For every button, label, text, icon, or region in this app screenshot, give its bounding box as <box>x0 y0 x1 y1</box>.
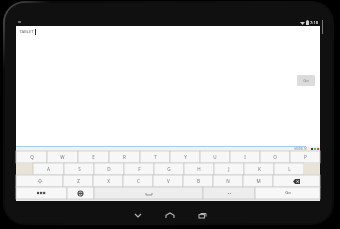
staticText: S <box>78 166 81 172</box>
staticText: O <box>273 154 277 160</box>
button[interactable]: M <box>243 175 273 187</box>
staticText: MODEL M <box>294 147 307 151</box>
button[interactable]: E <box>78 151 109 163</box>
button[interactable]: A <box>33 163 64 175</box>
button[interactable]: Space <box>94 187 203 199</box>
button[interactable]: W <box>47 151 78 163</box>
staticText: T <box>154 154 157 160</box>
staticText: 7:18 <box>310 20 318 25</box>
button[interactable]: Numbers and symbols <box>16 187 67 199</box>
staticText: G <box>167 166 171 172</box>
button[interactable]: Y <box>170 151 200 163</box>
staticText: V <box>167 178 170 184</box>
staticText: E <box>92 154 95 160</box>
button[interactable]: G <box>154 163 184 175</box>
button[interactable]: V <box>153 175 183 187</box>
staticText: A <box>47 166 50 172</box>
button[interactable]: S <box>64 163 94 175</box>
staticText: Go <box>285 190 291 196</box>
button[interactable]: L <box>274 163 304 175</box>
staticText: P <box>304 154 307 160</box>
button[interactable]: C <box>123 175 153 187</box>
button[interactable]: Go <box>297 75 315 86</box>
button[interactable]: Recent apps <box>190 208 214 222</box>
staticText: I <box>244 154 246 160</box>
staticText: L <box>288 166 291 172</box>
button[interactable]: X <box>93 175 123 187</box>
button[interactable]: Q <box>16 151 47 163</box>
button[interactable]: Shift <box>16 175 63 187</box>
button[interactable]: N <box>213 175 243 187</box>
button[interactable]: P <box>290 151 320 163</box>
staticText: W <box>60 154 65 160</box>
button[interactable]: O <box>260 151 290 163</box>
staticText: Z <box>77 178 80 184</box>
staticText: D <box>107 166 111 172</box>
button[interactable]: B <box>183 175 213 187</box>
staticText: K <box>258 166 261 172</box>
button[interactable]: J <box>214 163 244 175</box>
button[interactable]: U <box>200 151 230 163</box>
button[interactable]: Change keyboard language <box>67 187 94 199</box>
button[interactable]: H <box>184 163 214 175</box>
staticText: C <box>137 178 140 184</box>
staticText: Q <box>30 154 34 160</box>
staticText: R <box>123 154 126 160</box>
staticText: N <box>226 178 230 184</box>
staticText: X <box>107 178 110 184</box>
staticText: F <box>138 166 141 172</box>
button[interactable]: T <box>140 151 170 163</box>
button[interactable]: Home <box>158 208 182 222</box>
staticText: TABLET <box>19 29 34 35</box>
staticText: H <box>197 166 201 172</box>
button[interactable]: Z <box>63 175 93 187</box>
button[interactable]: Hide keyboard <box>126 208 150 222</box>
button[interactable]: F <box>124 163 154 175</box>
staticText: U <box>213 154 217 160</box>
button[interactable]: Period <box>203 187 255 199</box>
staticText: J <box>228 166 230 172</box>
button[interactable]: Backspace <box>273 175 320 187</box>
button[interactable]: D <box>94 163 124 175</box>
staticText: B <box>197 178 200 184</box>
staticText: Go <box>303 78 309 83</box>
staticText: Y <box>184 154 187 160</box>
staticText: M <box>256 178 261 184</box>
button[interactable]: R <box>109 151 140 163</box>
button[interactable]: K <box>244 163 274 175</box>
button[interactable]: I <box>230 151 260 163</box>
button[interactable]: Go <box>255 187 320 199</box>
